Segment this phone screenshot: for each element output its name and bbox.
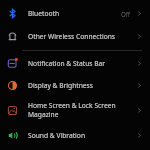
button[interactable]: Display & Brightness	[0, 74, 150, 97]
staticText: Bluetooth	[28, 9, 121, 18]
staticText: Display & Brightness	[28, 81, 136, 90]
staticText: Home Screen & Lock Screen Magazine	[28, 101, 136, 119]
staticText: Other Wireless Connections	[28, 32, 136, 41]
button[interactable]: Home Screen & Lock Screen Magazine	[0, 97, 150, 123]
staticText: Sound & Vibration	[28, 131, 136, 140]
button[interactable]: Notification & Status Bar	[0, 52, 150, 74]
staticText: Off	[121, 10, 131, 18]
staticText: Notification & Status Bar	[28, 59, 136, 68]
button[interactable]: Sound & Vibration	[0, 123, 150, 147]
button[interactable]: Bluetooth	[0, 3, 150, 24]
button[interactable]: Other Wireless Connections	[0, 24, 150, 49]
